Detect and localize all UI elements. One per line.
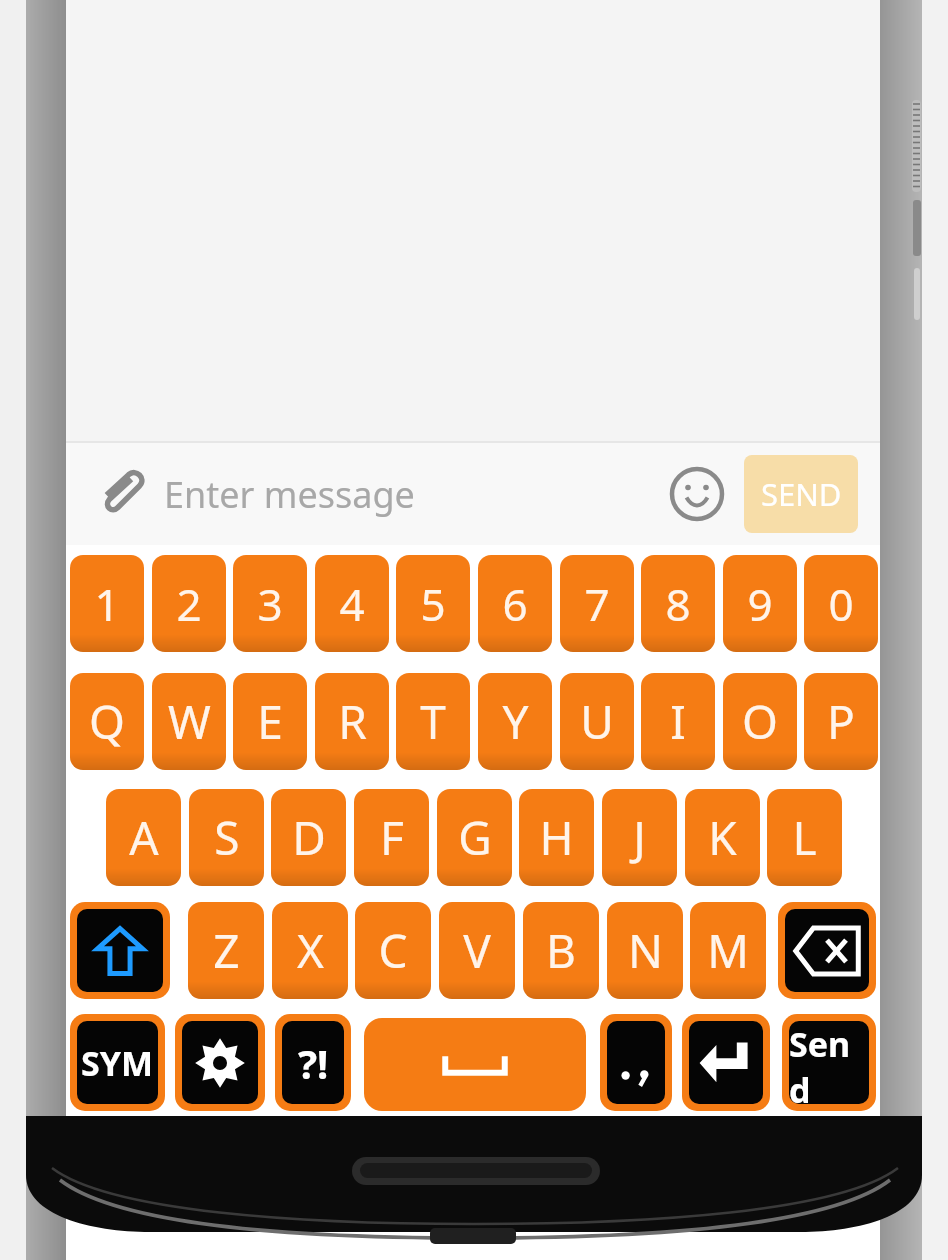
staticText: P — [827, 690, 855, 753]
button[interactable]: R — [315, 673, 389, 770]
staticText: S — [214, 806, 240, 869]
staticText: L — [792, 806, 817, 869]
staticText: U — [580, 690, 614, 753]
button[interactable]: Space — [364, 1018, 586, 1111]
staticText: H — [539, 806, 574, 869]
button[interactable]: P — [804, 673, 878, 770]
staticText: 6 — [502, 574, 528, 634]
button[interactable]: Comma period — [600, 1014, 672, 1111]
button[interactable]: C — [355, 902, 431, 999]
button[interactable]: J — [602, 789, 677, 886]
staticText: 0 — [828, 574, 854, 634]
staticText: C — [378, 919, 408, 982]
staticText: X — [297, 919, 324, 982]
button[interactable]: Q — [70, 673, 144, 770]
staticText: Y — [502, 690, 529, 753]
staticText: Z — [213, 919, 240, 982]
button[interactable]: X — [272, 902, 348, 999]
staticText: F — [380, 806, 404, 869]
staticText: 5 — [420, 574, 446, 634]
button[interactable]: 6 — [478, 555, 552, 652]
button[interactable]: E — [233, 673, 307, 770]
button[interactable]: N — [607, 902, 683, 999]
staticText: T — [420, 690, 446, 753]
staticText: B — [546, 919, 576, 982]
button[interactable]: Backspace — [778, 902, 876, 999]
button[interactable]: B — [523, 902, 599, 999]
button[interactable]: 8 — [641, 555, 715, 652]
button[interactable]: 0 — [804, 555, 878, 652]
staticText: SEND — [761, 473, 842, 515]
button[interactable]: 4 — [315, 555, 389, 652]
staticText: 4 — [339, 574, 365, 634]
button[interactable]: T — [396, 673, 470, 770]
button[interactable]: U — [560, 673, 634, 770]
button[interactable]: 7 — [560, 555, 634, 652]
button[interactable]: W — [152, 673, 226, 770]
button[interactable]: Shift — [70, 902, 170, 999]
button[interactable]: V — [439, 902, 515, 999]
staticText: Enter message — [164, 470, 415, 519]
staticText: R — [338, 690, 367, 753]
staticText: ?! — [298, 1036, 329, 1090]
staticText: A — [129, 806, 159, 869]
staticText: Send — [789, 1021, 869, 1104]
button[interactable]: S — [189, 789, 264, 886]
staticText: O — [742, 690, 778, 753]
button[interactable]: O — [723, 673, 797, 770]
button[interactable]: Symbols — [70, 1014, 165, 1111]
staticText: 2 — [176, 574, 202, 634]
staticText: N — [628, 919, 663, 982]
button[interactable]: Enter — [682, 1014, 770, 1111]
button[interactable]: L — [767, 789, 842, 886]
staticText: 1 — [94, 574, 120, 634]
staticText: K — [708, 806, 737, 869]
staticText: V — [463, 919, 491, 982]
button[interactable]: I — [641, 673, 715, 770]
button[interactable]: Punctuation — [275, 1014, 351, 1111]
button[interactable]: Send — [782, 1014, 876, 1111]
staticText: D — [292, 806, 326, 869]
staticText: M — [707, 919, 749, 982]
button[interactable]: 2 — [152, 555, 226, 652]
button[interactable]: M — [690, 902, 766, 999]
button[interactable]: F — [354, 789, 429, 886]
staticText: I — [670, 690, 686, 753]
staticText: 7 — [584, 574, 610, 634]
staticText: W — [168, 690, 211, 753]
button[interactable]: H — [519, 789, 594, 886]
button[interactable]: G — [437, 789, 512, 886]
button[interactable]: Settings — [175, 1014, 265, 1111]
button[interactable]: 1 — [70, 555, 144, 652]
button[interactable]: K — [685, 789, 760, 886]
button[interactable]: D — [271, 789, 346, 886]
button[interactable]: SEND — [744, 455, 858, 533]
button[interactable]: Z — [188, 902, 264, 999]
staticText: G — [458, 806, 492, 869]
staticText: Q — [89, 690, 125, 753]
button[interactable]: Emoji — [666, 463, 728, 525]
staticText: 8 — [665, 574, 691, 634]
button[interactable]: Y — [478, 673, 552, 770]
button[interactable]: 5 — [396, 555, 470, 652]
staticText: E — [257, 690, 283, 753]
staticText: J — [633, 806, 646, 869]
button[interactable]: 9 — [723, 555, 797, 652]
button[interactable]: Attach file — [92, 462, 156, 526]
staticText: SYM — [81, 1040, 154, 1086]
button[interactable]: 3 — [233, 555, 307, 652]
button[interactable]: A — [106, 789, 181, 886]
staticText: 9 — [747, 574, 773, 634]
staticText: 3 — [257, 574, 283, 634]
